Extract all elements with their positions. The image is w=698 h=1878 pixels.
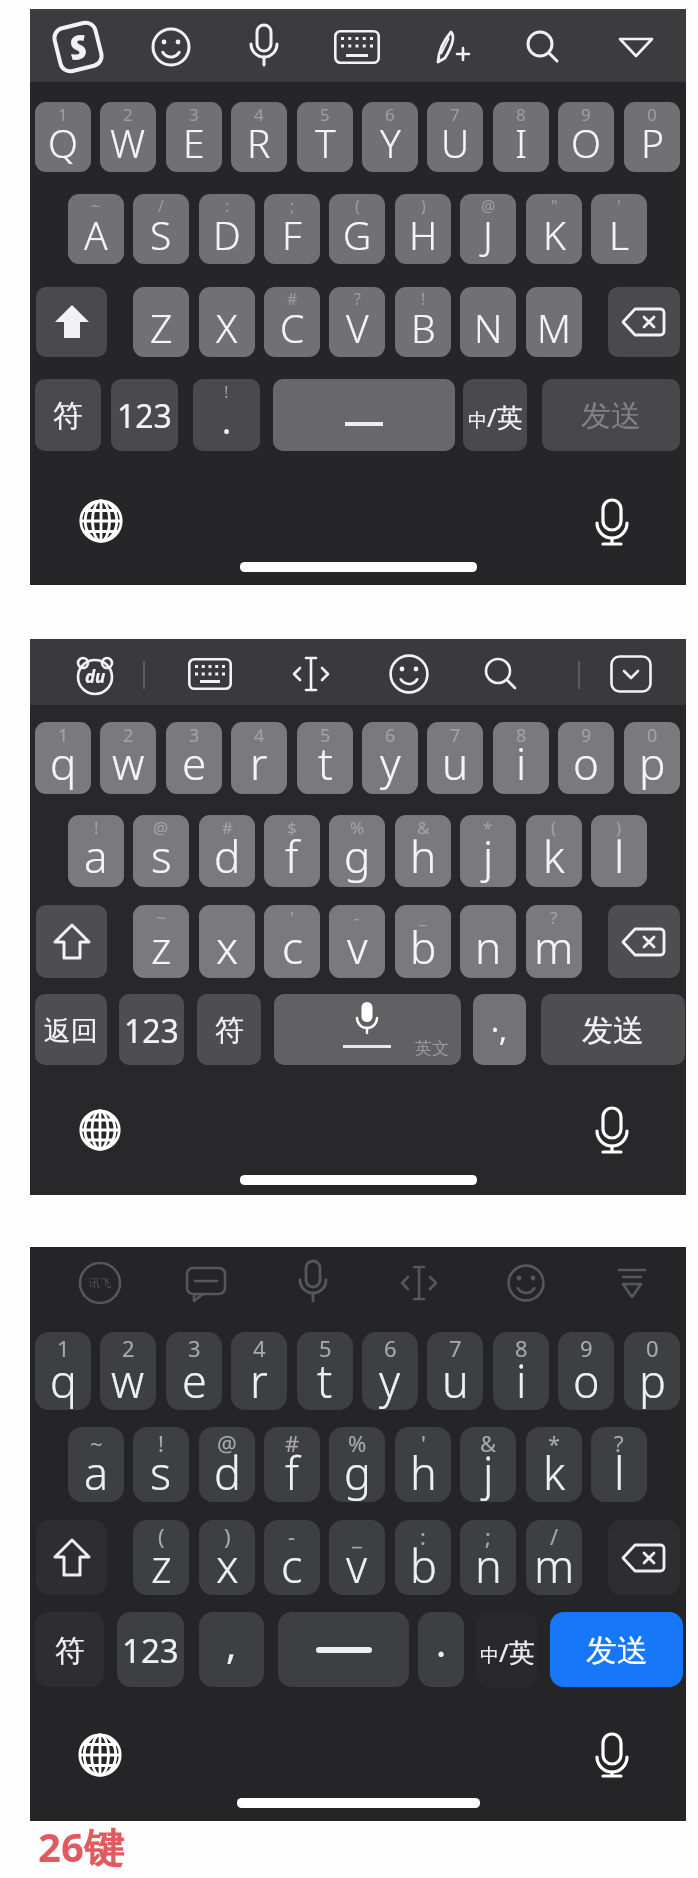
button[interactable]: ) [199,1520,255,1595]
button[interactable]: @ [460,194,516,264]
button[interactable] [588,1732,636,1780]
button[interactable]: 7 [427,722,483,794]
button[interactable]: 0 [624,102,680,172]
button[interactable]: # [264,287,320,357]
button[interactable]: 符 [197,994,261,1065]
button[interactable] [36,1520,107,1595]
button[interactable] [36,905,107,978]
button[interactable] [278,1612,409,1687]
button[interactable]: 3 [166,102,222,172]
button[interactable]: $ [264,815,320,887]
button[interactable]: 9 [558,1332,614,1410]
button[interactable]: ; [460,1520,516,1595]
button[interactable]: M [526,287,582,357]
button[interactable]: % [329,815,385,887]
button[interactable]: ( [133,1520,189,1595]
button[interactable]: ! [193,379,260,451]
button[interactable]: 5 [297,1332,353,1410]
button[interactable]: ? [526,905,582,978]
button[interactable]: 中/英 [463,379,527,451]
button[interactable]: 6 [362,1332,418,1410]
button[interactable] [588,1106,636,1156]
button[interactable]: # [264,1427,320,1502]
button[interactable]: 123 [119,994,184,1065]
button[interactable]: 6 [362,722,418,794]
button[interactable]: 5 [297,102,353,172]
button[interactable] [50,1537,94,1579]
button[interactable]: X [199,287,255,357]
button[interactable]: 9 [558,722,614,794]
button[interactable] [617,34,655,60]
button[interactable] [78,1108,122,1152]
button[interactable]: 8 [493,102,549,172]
button[interactable]: " [526,194,582,264]
button[interactable] [610,655,652,693]
button[interactable]: ; [264,194,320,264]
button[interactable] [608,905,680,978]
button[interactable]: ! [133,1427,189,1502]
button[interactable] [588,498,636,548]
button[interactable] [621,1542,667,1574]
button[interactable] [621,926,667,958]
button[interactable]: - [329,905,385,978]
button[interactable]: 1 [35,102,91,172]
button[interactable]: ' [395,1427,451,1502]
button[interactable]: ) [395,194,451,264]
button[interactable]: ! [395,287,451,357]
button[interactable]: 英文 [274,994,461,1065]
button[interactable] [188,658,232,690]
button[interactable]: 讯飞 [77,1260,123,1306]
button[interactable]: 3 [166,722,222,794]
button[interactable]: n [460,905,516,978]
button[interactable]: S [46,15,109,78]
button[interactable]: / [133,194,189,264]
button[interactable]: ( [526,815,582,887]
button[interactable]: 2 [100,1332,156,1410]
button[interactable]: 4 [231,102,287,172]
button[interactable]: 0 [624,722,680,794]
button[interactable]: % [329,1427,385,1502]
button[interactable]: 2 [100,722,156,794]
button[interactable]: 中/英 [476,1612,538,1687]
button[interactable]: ·, [473,994,526,1065]
button[interactable]: ' [591,194,647,264]
button[interactable]: ~ [68,194,124,264]
button[interactable]: & [395,815,451,887]
button[interactable]: : [199,194,255,264]
button[interactable]: 1 [35,1332,91,1410]
button[interactable]: 符 [35,379,101,451]
button[interactable]: 123 [111,379,178,451]
button[interactable] [273,379,455,451]
button[interactable]: Z [133,287,189,357]
button[interactable] [522,26,564,68]
button[interactable]: N [460,287,516,357]
button[interactable]: 发送 [550,1612,683,1687]
button[interactable] [608,1520,680,1595]
button[interactable]: # [199,815,255,887]
button[interactable] [242,24,286,70]
button[interactable]: 符 [35,1612,104,1687]
button[interactable]: & [460,1427,516,1502]
button[interactable]: 8 [493,722,549,794]
button[interactable]: 0 [624,1332,680,1410]
button[interactable]: du [67,650,123,698]
button[interactable] [354,1000,380,1036]
button[interactable] [621,306,667,338]
button[interactable] [429,26,471,68]
button[interactable] [293,1260,333,1306]
button[interactable]: 返回 [35,994,107,1065]
button[interactable]: * [526,1427,582,1502]
button[interactable]: ! [68,815,124,887]
button[interactable]: ~ [133,905,189,978]
button[interactable]: 5 [297,722,353,794]
button[interactable]: 9 [558,102,614,172]
button[interactable]: _ [329,1520,385,1595]
button[interactable] [150,26,192,68]
button[interactable]: ? [329,287,385,357]
button[interactable]: _ [395,905,451,978]
button[interactable]: @ [133,815,189,887]
button[interactable]: 发送 [542,379,680,451]
button[interactable]: 7 [427,1332,483,1410]
button[interactable]: 7 [427,102,483,172]
button[interactable]: , [199,1612,264,1687]
